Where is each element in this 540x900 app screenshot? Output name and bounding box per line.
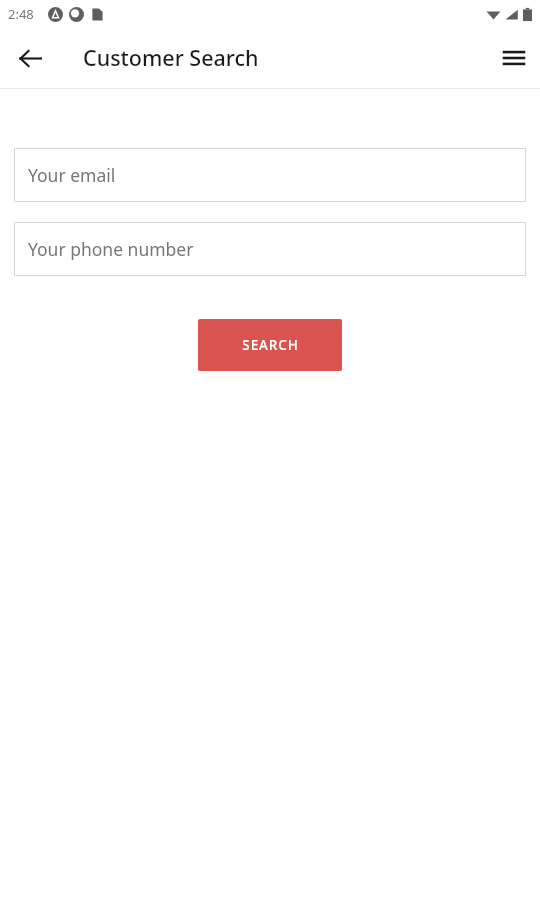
staticText: Customer Search <box>83 43 259 72</box>
button[interactable]: Back <box>6 34 54 82</box>
button[interactable]: Menu <box>490 34 538 82</box>
staticText: Your phone number <box>28 237 194 261</box>
button[interactable]: Your email <box>14 148 526 202</box>
button[interactable]: Your phone number <box>14 222 526 276</box>
button[interactable]: SEARCH <box>198 319 342 371</box>
staticText: 2:48 <box>8 5 34 23</box>
staticText: Your email <box>28 163 116 187</box>
staticText: SEARCH <box>242 336 299 354</box>
